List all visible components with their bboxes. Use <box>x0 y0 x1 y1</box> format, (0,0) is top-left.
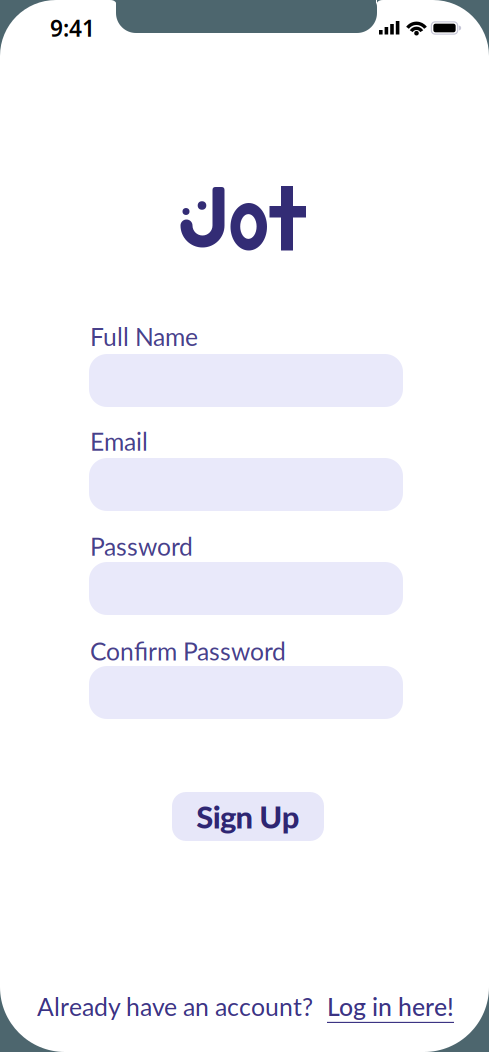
staticText: Already have an account? <box>37 992 313 1021</box>
staticText: Sign Up <box>196 798 300 835</box>
staticText: Email <box>90 426 148 456</box>
staticText: Confirm Password <box>90 636 286 666</box>
button[interactable]: Log in here! <box>327 992 454 1021</box>
staticText: Password <box>90 531 193 561</box>
staticText: Log in here! <box>327 992 454 1021</box>
staticText: 9:41 <box>50 13 95 43</box>
button[interactable]: Sign Up <box>172 792 324 841</box>
staticText: Full Name <box>90 322 198 351</box>
